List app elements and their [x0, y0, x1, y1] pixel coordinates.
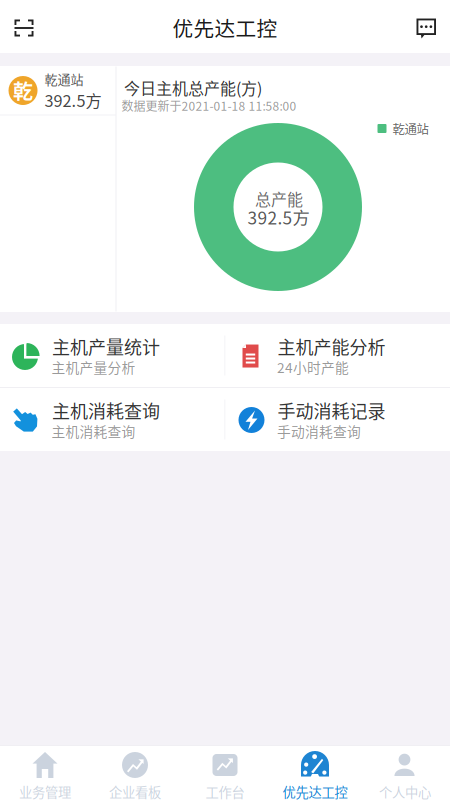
- staticText: 优先达工控: [282, 782, 347, 800]
- button[interactable]: 主机产能分析: [225, 324, 450, 387]
- staticText: 392.5方: [44, 88, 101, 112]
- button[interactable]: 个人中心: [360, 746, 450, 800]
- button[interactable]: 手动消耗记录: [225, 388, 450, 451]
- staticText: 今日主机总产能(方): [124, 76, 262, 99]
- staticText: 总产能: [255, 187, 303, 210]
- staticText: 乾通站: [392, 119, 428, 137]
- staticText: 392.5方: [247, 204, 309, 230]
- staticText: 个人中心: [379, 782, 431, 800]
- staticText: 数据更新于2021-01-18 11:58:00: [121, 97, 296, 114]
- staticText: 24小时产能: [277, 357, 349, 377]
- button[interactable]: 主机产量统计: [0, 324, 224, 387]
- staticText: 主机产量统计: [52, 333, 160, 360]
- button[interactable]: Scan: [2, 6, 46, 50]
- button[interactable]: 企业看板: [90, 746, 180, 800]
- staticText: 优先达工控: [172, 12, 277, 42]
- staticText: 业务管理: [19, 782, 71, 800]
- staticText: 乾通站: [44, 69, 83, 88]
- staticText: 手动消耗记录: [277, 397, 385, 424]
- staticText: 企业看板: [109, 782, 161, 800]
- button[interactable]: 主机消耗查询: [0, 388, 224, 451]
- staticText: 工作台: [205, 782, 244, 800]
- staticText: 手动消耗查询: [277, 421, 361, 441]
- staticText: 主机产量分析: [51, 357, 135, 377]
- button[interactable]: 工作台: [180, 746, 270, 800]
- staticText: 主机产能分析: [277, 333, 385, 360]
- button[interactable]: 优先达工控: [270, 746, 360, 800]
- button[interactable]: 业务管理: [0, 746, 90, 800]
- staticText: 主机消耗查询: [52, 397, 160, 424]
- button[interactable]: Messages: [404, 6, 448, 50]
- staticText: 主机消耗查询: [51, 421, 135, 441]
- staticText: 乾: [13, 76, 33, 105]
